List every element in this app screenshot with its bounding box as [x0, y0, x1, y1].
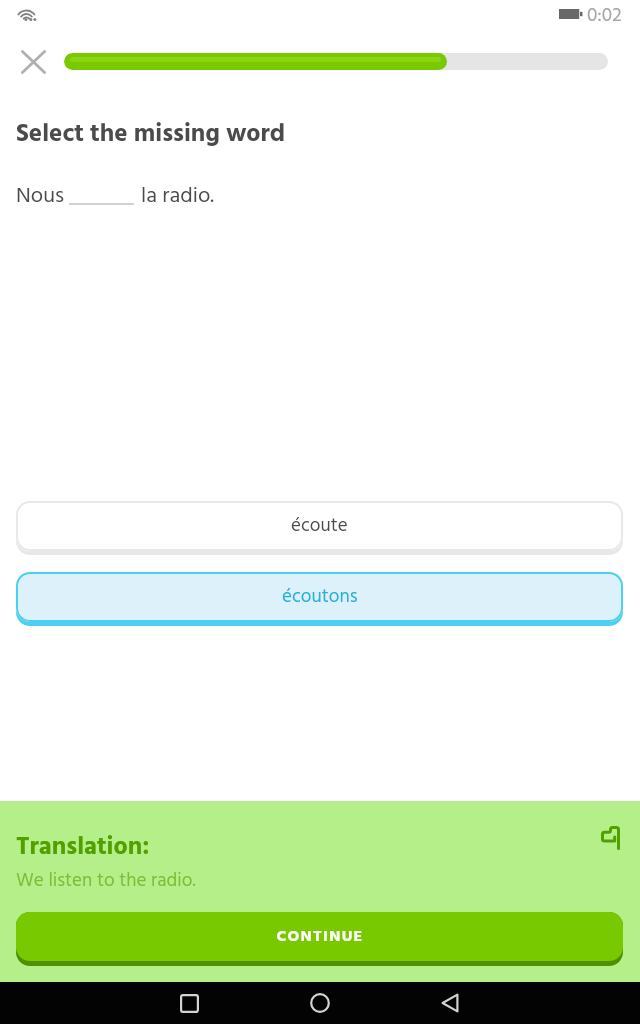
button[interactable]: Close [5, 34, 61, 90]
button[interactable]: Report [590, 818, 630, 858]
button[interactable]: Back [385, 982, 515, 1024]
button[interactable]: écoute [16, 501, 623, 555]
button[interactable]: écoutons [16, 572, 623, 626]
staticText: la radio. [141, 179, 214, 214]
button[interactable]: CONTINUE [16, 912, 623, 966]
staticText: Translation: [16, 828, 150, 868]
button[interactable]: Home [255, 982, 385, 1024]
staticText: Select the missing word [16, 115, 286, 155]
staticText: Nous [16, 179, 65, 214]
staticText: 0:02 [587, 1, 622, 31]
staticText: écoute [291, 511, 348, 541]
staticText: We listen to the radio. [16, 866, 196, 896]
staticText: CONTINUE [276, 924, 364, 950]
button[interactable]: Recent apps [124, 982, 254, 1024]
staticText: écoutons [282, 582, 358, 612]
